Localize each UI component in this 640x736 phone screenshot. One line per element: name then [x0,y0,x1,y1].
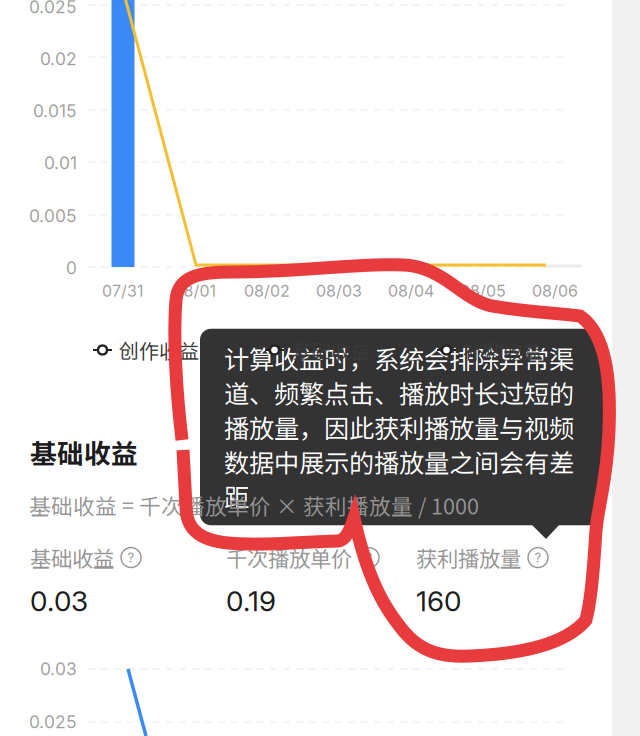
staticText: ? [127,549,134,566]
staticText: 08/06 [532,281,578,301]
staticText: 获利播放量 [416,542,521,573]
staticText: 补贴收益 [463,335,543,364]
staticText: ? [365,549,372,566]
staticText: 基础收益 [291,335,371,364]
staticText: 08/04 [388,281,434,301]
staticText: 创作收益 [119,335,199,364]
staticText: ? [534,549,541,566]
staticText: 0.03 [30,584,88,618]
staticText: 播放量，因此获利播放量与视频 [224,409,574,445]
staticText: 0.02 [40,48,77,69]
staticText: 08/03 [316,281,362,301]
staticText: 0.025 [29,0,77,17]
staticText: 160 [416,584,461,618]
staticText: 计算收益时，系统会排除异常渠 [224,340,574,376]
staticText: 基础收益 = 千次播放单价 × 获利播放量 / 1000 [29,489,479,521]
staticText: 距 [224,478,249,514]
staticText: 数据中展示的播放量之间会有差 [224,443,574,480]
staticText: 08/01 [173,281,216,301]
staticText: 0.005 [29,205,77,226]
staticText: 0.19 [226,584,276,618]
staticText: 0.03 [40,658,77,679]
staticText: 0.015 [33,100,77,121]
staticText: 0.01 [44,152,77,173]
staticText: 07/31 [102,281,144,301]
staticText: 08/05 [460,281,506,301]
staticText: 道、频繁点击、播放时长过短的 [224,374,574,411]
staticText: 08/02 [244,281,290,301]
staticText: 基础收益 [30,542,114,573]
staticText: 千次播放单价 [226,542,352,573]
staticText: 0.025 [29,711,77,732]
staticText: 基础收益 [30,433,138,471]
staticText: 0 [66,257,77,278]
